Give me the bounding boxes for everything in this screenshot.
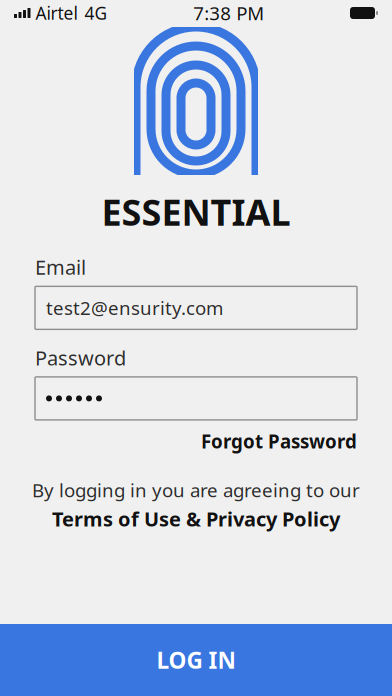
staticText: Password: [35, 344, 126, 371]
staticText: LOG IN: [156, 645, 235, 675]
staticText: test2@ensurity.com: [46, 295, 223, 320]
staticText: Terms of Use & Privacy Policy: [52, 505, 340, 532]
staticText: 4G: [84, 1, 107, 24]
button[interactable]: LOG IN: [0, 624, 392, 696]
button[interactable]: Forgot Password: [201, 429, 357, 454]
staticText: Email: [35, 254, 86, 280]
button[interactable]: test2@ensurity.com: [35, 286, 357, 329]
staticText: 7:38 PM: [193, 1, 264, 25]
staticText: ESSENTIAL: [101, 188, 290, 236]
button[interactable]: [35, 377, 357, 420]
staticText: Forgot Password: [201, 429, 357, 454]
staticText: Airtel: [35, 1, 77, 24]
button[interactable]: Terms of Use & Privacy Policy: [52, 505, 340, 532]
staticText: By logging in you are agreeing to our: [32, 478, 360, 502]
